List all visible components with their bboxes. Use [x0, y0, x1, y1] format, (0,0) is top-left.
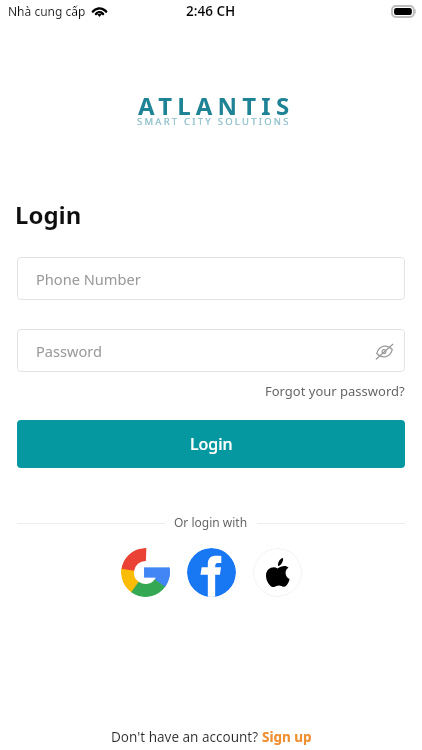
staticText: Sign up [262, 728, 312, 746]
button[interactable]: Sign in with Google [121, 548, 170, 597]
staticText: SMART CITY SOLUTIONS [137, 115, 291, 128]
staticText: Nhà cung cấp [8, 3, 86, 19]
button[interactable]: Show password [371, 338, 397, 364]
staticText: 2:46 CH [186, 2, 236, 20]
staticText: Phone Number [36, 269, 141, 289]
staticText: Forgot your password? [265, 382, 405, 400]
button[interactable]: Sign up [262, 728, 312, 746]
button[interactable]: Sign in with Apple [253, 548, 302, 597]
staticText: Login [190, 433, 233, 455]
staticText: Or login with [174, 514, 248, 530]
button[interactable]: Password [17, 329, 405, 372]
staticText: Don't have an account? [111, 728, 262, 746]
button[interactable]: Login [17, 420, 405, 468]
staticText: ATLANTIS [138, 89, 295, 122]
button[interactable]: Forgot your password? [265, 382, 405, 400]
button[interactable]: Sign in with Facebook [187, 548, 236, 597]
button[interactable]: Phone Number [17, 257, 405, 300]
staticText: Password [36, 341, 103, 361]
staticText: Login [15, 198, 82, 231]
